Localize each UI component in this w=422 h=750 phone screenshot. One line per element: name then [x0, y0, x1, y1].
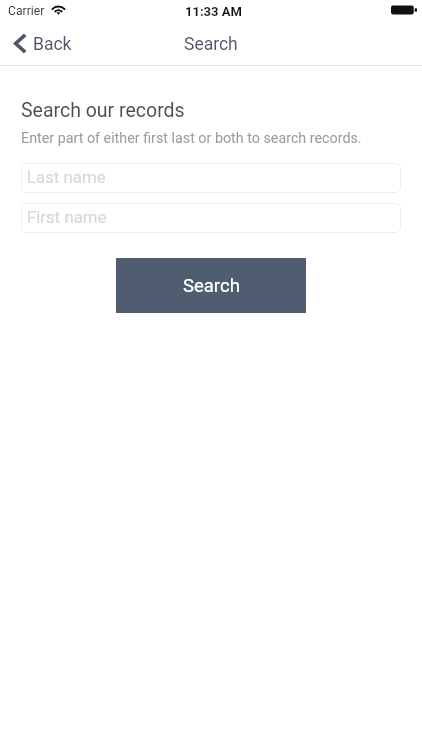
other: Battery full	[391, 5, 417, 15]
staticText: 11:33 AM	[185, 4, 242, 19]
other: Wi-Fi	[52, 5, 65, 15]
button[interactable]: Search	[116, 258, 306, 313]
button[interactable]: Last name	[21, 163, 401, 193]
staticText: First name	[27, 207, 107, 227]
staticText: Search	[183, 275, 240, 297]
staticText: Enter part of either first last or both …	[21, 130, 362, 147]
staticText: Search our records	[21, 99, 185, 122]
button[interactable]: First name	[21, 203, 401, 233]
button[interactable]: Back	[0, 28, 82, 61]
staticText: Carrier	[8, 4, 45, 18]
staticText: Back	[33, 34, 72, 55]
staticText: Search	[184, 34, 238, 55]
staticText: Last name	[27, 167, 106, 187]
